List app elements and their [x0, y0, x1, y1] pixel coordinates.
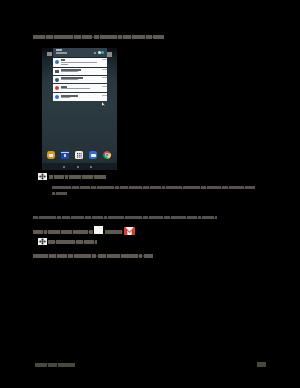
- button[interactable]: Chrome: [103, 151, 111, 159]
- button[interactable]: Apps: [75, 151, 83, 159]
- button[interactable]: [53, 68, 107, 75]
- button[interactable]: [53, 76, 107, 83]
- button[interactable]: [53, 93, 107, 101]
- other: Pointer: [102, 102, 105, 106]
- button[interactable]: [53, 84, 107, 92]
- button[interactable]: Camera: [89, 151, 97, 159]
- button[interactable]: [53, 58, 107, 67]
- button[interactable]: Calendar: [61, 151, 69, 159]
- other: Gmail: [124, 227, 135, 235]
- button[interactable]: Email: [47, 151, 55, 159]
